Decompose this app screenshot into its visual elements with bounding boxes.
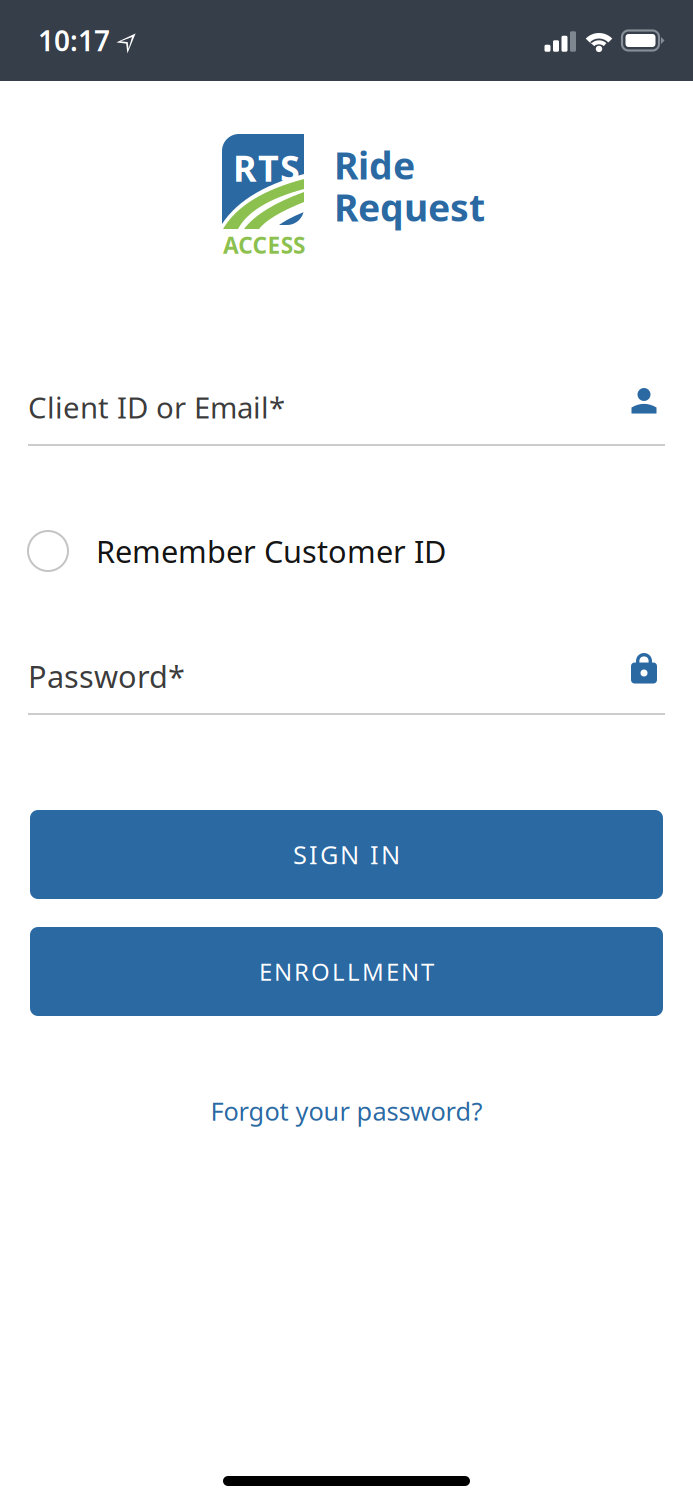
button[interactable]: SIGN IN: [30, 810, 663, 899]
staticText: Client ID or Email*: [28, 387, 285, 426]
staticText: ACCESS: [223, 230, 305, 260]
button[interactable]: Remember Customer ID: [28, 531, 665, 571]
staticText: Forgot your password?: [210, 1094, 482, 1128]
button[interactable]: Forgot your password?: [166, 1089, 526, 1133]
staticText: ENROLLMENT: [259, 956, 434, 987]
button[interactable]: ENROLLMENT: [30, 927, 663, 1016]
staticText: 10:17: [38, 22, 110, 59]
staticText: RTS: [233, 144, 300, 192]
staticText: Remember Customer ID: [96, 531, 446, 571]
staticText: Ride: [334, 140, 415, 190]
staticText: Password*: [28, 656, 185, 696]
staticText: Request: [334, 182, 485, 232]
staticText: SIGN IN: [293, 838, 400, 871]
